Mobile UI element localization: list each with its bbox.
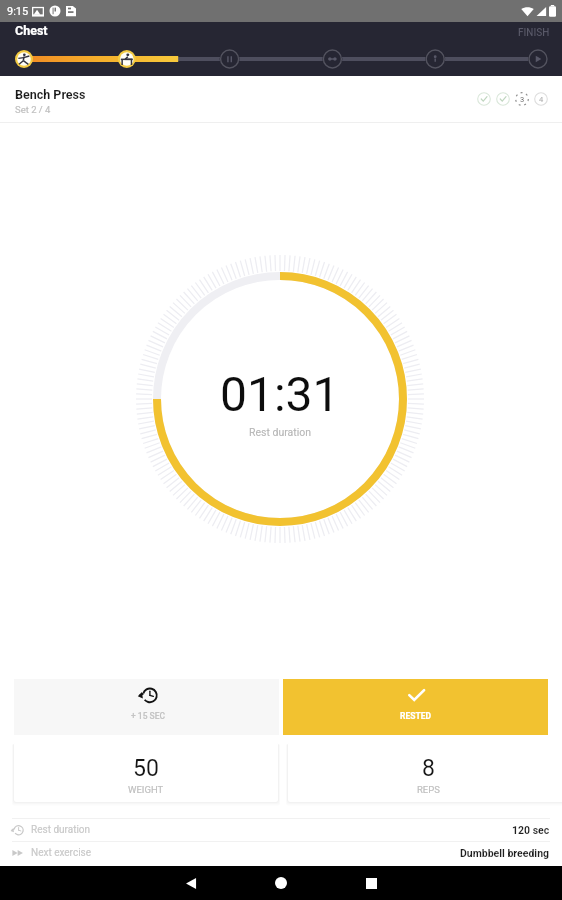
button[interactable]: Set 4 [532, 90, 550, 108]
button[interactable]: + 15 SEC [14, 679, 279, 735]
staticText: 8 [422, 755, 435, 782]
staticText: Dumbbell breeding [460, 847, 550, 859]
button[interactable]: Set 3 [513, 90, 531, 108]
staticText: Set 2 / 4 [15, 104, 51, 115]
staticText: + 15 SEC [131, 711, 166, 721]
staticText: 4 [539, 95, 544, 104]
button[interactable]: Set 2 [494, 90, 512, 108]
button[interactable]: Recent apps [347, 866, 395, 900]
staticText: 01:31 [220, 366, 340, 422]
staticText: Next exercise [31, 847, 92, 859]
staticText: RESTED [400, 711, 432, 721]
button[interactable]: 8 [288, 742, 562, 802]
button[interactable]: Next exercise [12, 842, 550, 864]
button[interactable]: RESTED [283, 679, 548, 735]
staticText: FINISH [518, 27, 550, 39]
button[interactable]: Back [167, 866, 215, 900]
button[interactable]: Set 1 [475, 90, 493, 108]
staticText: 9:15 [7, 5, 29, 18]
button[interactable]: FINISH [518, 27, 550, 39]
staticText: REPS [417, 784, 440, 795]
staticText: Bench Press [15, 87, 86, 102]
staticText: Rest duration [249, 426, 312, 438]
staticText: 50 [133, 755, 159, 782]
button[interactable]: Rest duration [12, 819, 550, 841]
staticText: Rest duration [31, 824, 91, 836]
staticText: Chest [15, 23, 48, 38]
staticText: WEIGHT [128, 784, 164, 795]
staticText: 120 sec [512, 824, 550, 836]
button[interactable]: Bench Press [0, 76, 562, 122]
staticText: 3 [520, 95, 525, 104]
button[interactable]: Home [257, 866, 305, 900]
button[interactable]: 50 [14, 742, 278, 802]
